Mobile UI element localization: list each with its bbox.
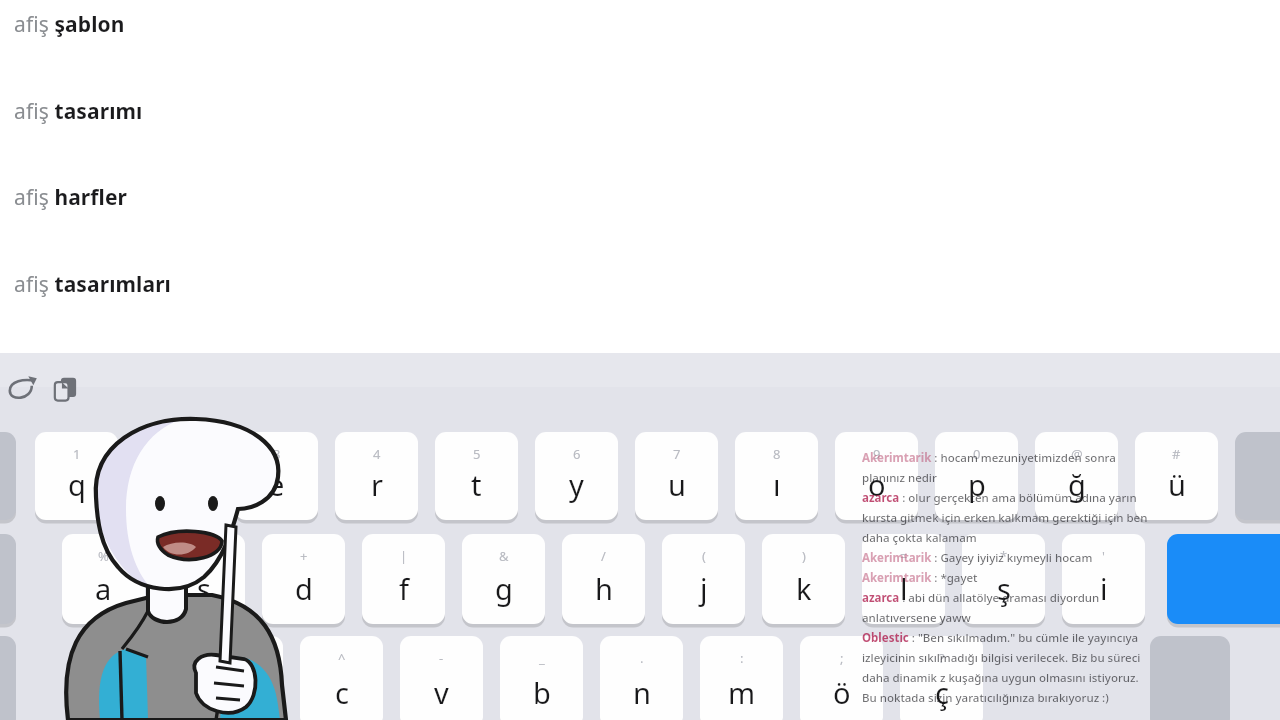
staticText: ; (840, 649, 844, 667)
staticText: ( (702, 547, 706, 565)
staticText: 3 (273, 445, 281, 463)
staticText: 6 (573, 445, 581, 463)
staticText: q (68, 465, 86, 504)
staticText: Akerimtarik : *gayet (862, 570, 978, 586)
button[interactable]: 6 (535, 432, 618, 520)
button[interactable]: afiş harfler (0, 182, 1280, 212)
staticText: % (98, 547, 109, 565)
button[interactable]: . (600, 636, 683, 720)
staticText: i (1100, 569, 1108, 608)
staticText: t (471, 465, 482, 504)
button[interactable]: > (200, 636, 283, 720)
staticText: _ (539, 649, 545, 667)
button[interactable]: / (562, 534, 645, 624)
button[interactable]: afiş tasarımı (0, 96, 1280, 126)
staticText: g (495, 569, 513, 608)
button[interactable]: % (62, 534, 145, 624)
button[interactable]: _ (500, 636, 583, 720)
button[interactable]: Backspace (1235, 432, 1280, 520)
button[interactable]: * (962, 534, 1045, 624)
staticText: 5 (473, 445, 481, 463)
button[interactable]: 5 (435, 432, 518, 520)
staticText: c (335, 673, 349, 712)
staticText: 0 (973, 445, 981, 463)
staticText: ? (939, 649, 945, 667)
staticText: u (668, 465, 686, 504)
staticText: s (197, 569, 211, 608)
staticText: ş (997, 569, 1011, 608)
staticText: p (968, 465, 986, 504)
staticText: 7 (673, 445, 681, 463)
staticText: * (1000, 547, 1008, 565)
staticText: ' (1102, 547, 1105, 565)
button[interactable]: Enter (1167, 534, 1280, 624)
staticText: f (399, 569, 409, 608)
button[interactable]: Shift (0, 636, 16, 720)
staticText: z (135, 673, 149, 712)
staticText: " (201, 547, 207, 565)
button[interactable]: 4 (335, 432, 418, 520)
staticText: # (1172, 445, 1181, 463)
staticText: ^ (338, 649, 346, 667)
button[interactable]: Shift (0, 432, 16, 520)
staticText: daha dinamik z kuşağına uygun olmasını i… (862, 670, 1139, 686)
staticText: < (138, 649, 146, 667)
staticText: ) (802, 547, 806, 565)
button[interactable]: 8 (735, 432, 818, 520)
button[interactable]: + (262, 534, 345, 624)
staticText: 8 (773, 445, 781, 463)
staticText: afiş tasarımları (14, 270, 171, 299)
staticText: o (868, 465, 886, 504)
button[interactable]: ? (900, 636, 983, 720)
staticText: ü (1168, 465, 1186, 504)
button[interactable]: < (100, 636, 183, 720)
staticText: b (533, 673, 551, 712)
staticText: r (371, 465, 383, 504)
button[interactable]: - (400, 636, 483, 720)
button[interactable]: ) (762, 534, 845, 624)
staticText: l (900, 569, 908, 608)
button[interactable]: Redo (0, 371, 40, 407)
staticText: azarca : abi dün allatölye draması diyor… (862, 590, 1100, 606)
button[interactable]: " (162, 534, 245, 624)
button[interactable]: 7 (635, 432, 718, 520)
button[interactable]: 9 (835, 432, 918, 520)
button[interactable]: ^ (300, 636, 383, 720)
staticText: planınız nedir (862, 470, 937, 486)
button[interactable]: Shift (0, 534, 16, 624)
button[interactable]: : (700, 636, 783, 720)
button[interactable]: @ (1035, 432, 1118, 520)
button[interactable]: afiş tasarımları (0, 269, 1280, 299)
button[interactable]: ( (662, 534, 745, 624)
staticText: Bu noktada sizin yaratıcılığınıza bırakı… (862, 690, 1109, 706)
button[interactable]: # (1135, 432, 1218, 520)
button[interactable]: = (862, 534, 945, 624)
staticText: > (238, 649, 246, 667)
staticText: Akerimtarik : hocam mezuniyetimizden son… (862, 450, 1116, 466)
staticText: 1 (73, 445, 81, 463)
button[interactable]: 1 (35, 432, 118, 520)
button[interactable]: 2 (135, 432, 218, 520)
staticText: ı (773, 465, 781, 504)
staticText: | (400, 547, 408, 565)
button[interactable]: 0 (935, 432, 1018, 520)
button[interactable]: | (362, 534, 445, 624)
button[interactable]: & (462, 534, 545, 624)
staticText: Akerimtarik : Gayey iyiyiz kıymeyli hoca… (862, 550, 1093, 566)
staticText: & (499, 547, 509, 565)
staticText: azarca : olur gerçekten ama bölümüm adın… (862, 490, 1137, 506)
button[interactable]: ; (800, 636, 883, 720)
staticText: a (95, 569, 112, 608)
button[interactable]: afiş şablon (0, 9, 1280, 39)
staticText: ğ (1068, 465, 1086, 504)
staticText: x (234, 673, 250, 712)
button[interactable]: Clipboard (48, 369, 86, 409)
button[interactable]: ' (1062, 534, 1145, 624)
staticText: : (740, 649, 744, 667)
staticText: 9 (873, 445, 881, 463)
button[interactable]: 3 (235, 432, 318, 520)
staticText: 4 (373, 445, 381, 463)
